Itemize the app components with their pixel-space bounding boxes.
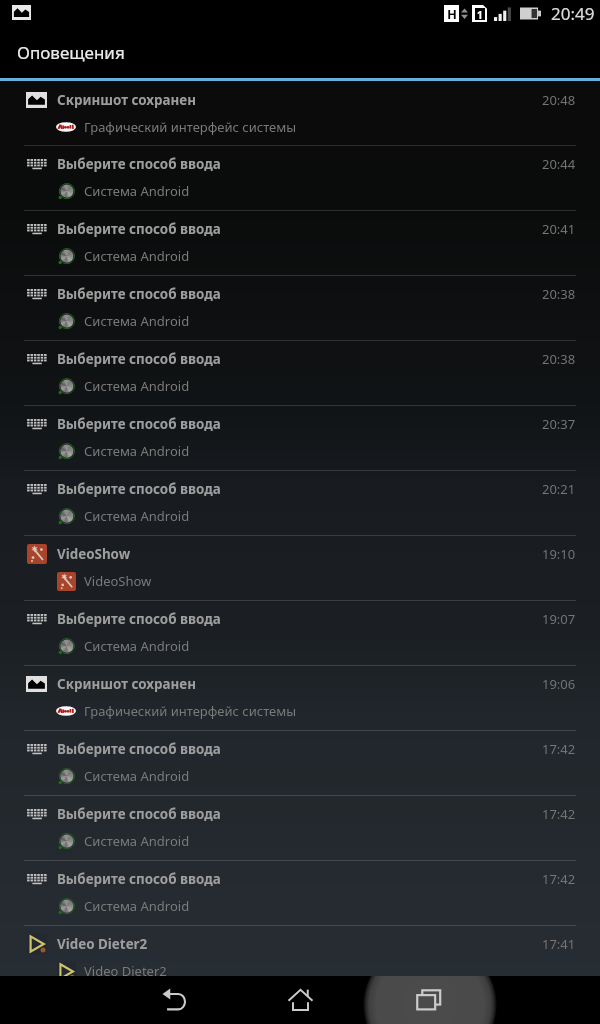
staticText: Система Android xyxy=(84,637,190,655)
button[interactable]: Выберите способ ввода xyxy=(0,275,600,340)
staticText: 20:38 xyxy=(542,285,576,303)
staticText: Выберите способ ввода xyxy=(57,415,542,433)
staticText: VideoShow xyxy=(84,572,152,590)
staticText: Система Android xyxy=(84,312,190,330)
button[interactable]: Выберите способ ввода xyxy=(0,340,600,405)
staticText: Выберите способ ввода xyxy=(57,480,542,498)
button[interactable]: Video Dieter2 xyxy=(0,925,600,990)
staticText: Video Dieter2 xyxy=(57,935,542,953)
staticText: H xyxy=(447,5,457,22)
button[interactable]: Скриншот сохранен xyxy=(0,665,600,730)
staticText: Графический интерфейс системы xyxy=(84,118,297,136)
staticText: 19:06 xyxy=(542,675,576,693)
staticText: VideoShow xyxy=(57,545,542,563)
staticText: Скриншот сохранен xyxy=(57,91,542,109)
staticText: 20:21 xyxy=(542,480,576,498)
staticText: Выберите способ ввода xyxy=(57,220,542,238)
staticText: 20:41 xyxy=(542,220,576,238)
button[interactable]: Back xyxy=(133,976,213,1024)
staticText: Video Dieter2 xyxy=(84,962,167,980)
staticText: Выберите способ ввода xyxy=(57,285,542,303)
button[interactable]: Home xyxy=(260,976,340,1024)
staticText: Выберите способ ввода xyxy=(57,610,542,628)
button[interactable]: Выберите способ ввода xyxy=(0,730,600,795)
staticText: Скриншот сохранен xyxy=(57,675,542,693)
staticText: 17:41 xyxy=(542,935,576,953)
staticText: 17:42 xyxy=(542,870,576,888)
button[interactable]: Выберите способ ввода xyxy=(0,600,600,665)
staticText: 20:49 xyxy=(551,2,595,25)
staticText: Система Android xyxy=(84,767,190,785)
staticText: 20:48 xyxy=(542,91,576,109)
button[interactable]: Recent apps xyxy=(389,976,469,1024)
button[interactable]: Выберите способ ввода xyxy=(0,860,600,925)
staticText: 19:10 xyxy=(542,545,576,563)
staticText: 20:37 xyxy=(542,415,576,433)
button[interactable]: Выберите способ ввода xyxy=(0,470,600,535)
staticText: 17:42 xyxy=(542,805,576,823)
button[interactable]: Оповещения xyxy=(0,26,600,78)
button[interactable]: Выберите способ ввода xyxy=(0,145,600,210)
staticText: Система Android xyxy=(84,182,190,200)
button[interactable]: VideoShow xyxy=(0,535,600,600)
staticText: Выберите способ ввода xyxy=(57,155,542,173)
button[interactable]: Выберите способ ввода xyxy=(0,405,600,470)
staticText: 19:07 xyxy=(542,610,576,628)
button[interactable]: Выберите способ ввода xyxy=(0,795,600,860)
staticText: 20:38 xyxy=(542,350,576,368)
staticText: Система Android xyxy=(84,247,190,265)
staticText: Система Android xyxy=(84,507,190,525)
staticText: Выберите способ ввода xyxy=(57,350,542,368)
button[interactable]: Выберите способ ввода xyxy=(0,210,600,275)
staticText: Система Android xyxy=(84,442,190,460)
staticText: Система Android xyxy=(84,832,190,850)
staticText: Графический интерфейс системы xyxy=(84,702,297,720)
staticText: Выберите способ ввода xyxy=(57,740,542,758)
staticText: 20:44 xyxy=(542,155,576,173)
staticText: Выберите способ ввода xyxy=(57,870,542,888)
staticText: 1 xyxy=(477,8,483,20)
staticText: Система Android xyxy=(84,897,190,915)
staticText: Система Android xyxy=(84,377,190,395)
staticText: Выберите способ ввода xyxy=(57,805,542,823)
staticText: 17:42 xyxy=(542,740,576,758)
staticText: Оповещения xyxy=(17,41,125,64)
button[interactable]: Скриншот сохранен xyxy=(0,81,600,145)
